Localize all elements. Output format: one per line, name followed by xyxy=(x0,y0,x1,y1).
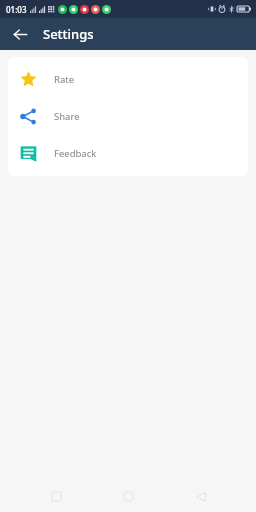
button[interactable]: Share xyxy=(8,98,248,135)
button[interactable]: Feedback xyxy=(8,135,248,172)
button[interactable]: Back xyxy=(8,22,32,46)
button[interactable]: Rate xyxy=(8,61,248,98)
staticText: Rate xyxy=(54,73,75,86)
staticText: Share xyxy=(54,110,80,123)
staticText: Feedback xyxy=(54,147,97,160)
staticText: Settings xyxy=(43,25,94,43)
staticText: 01:03 xyxy=(6,4,27,15)
